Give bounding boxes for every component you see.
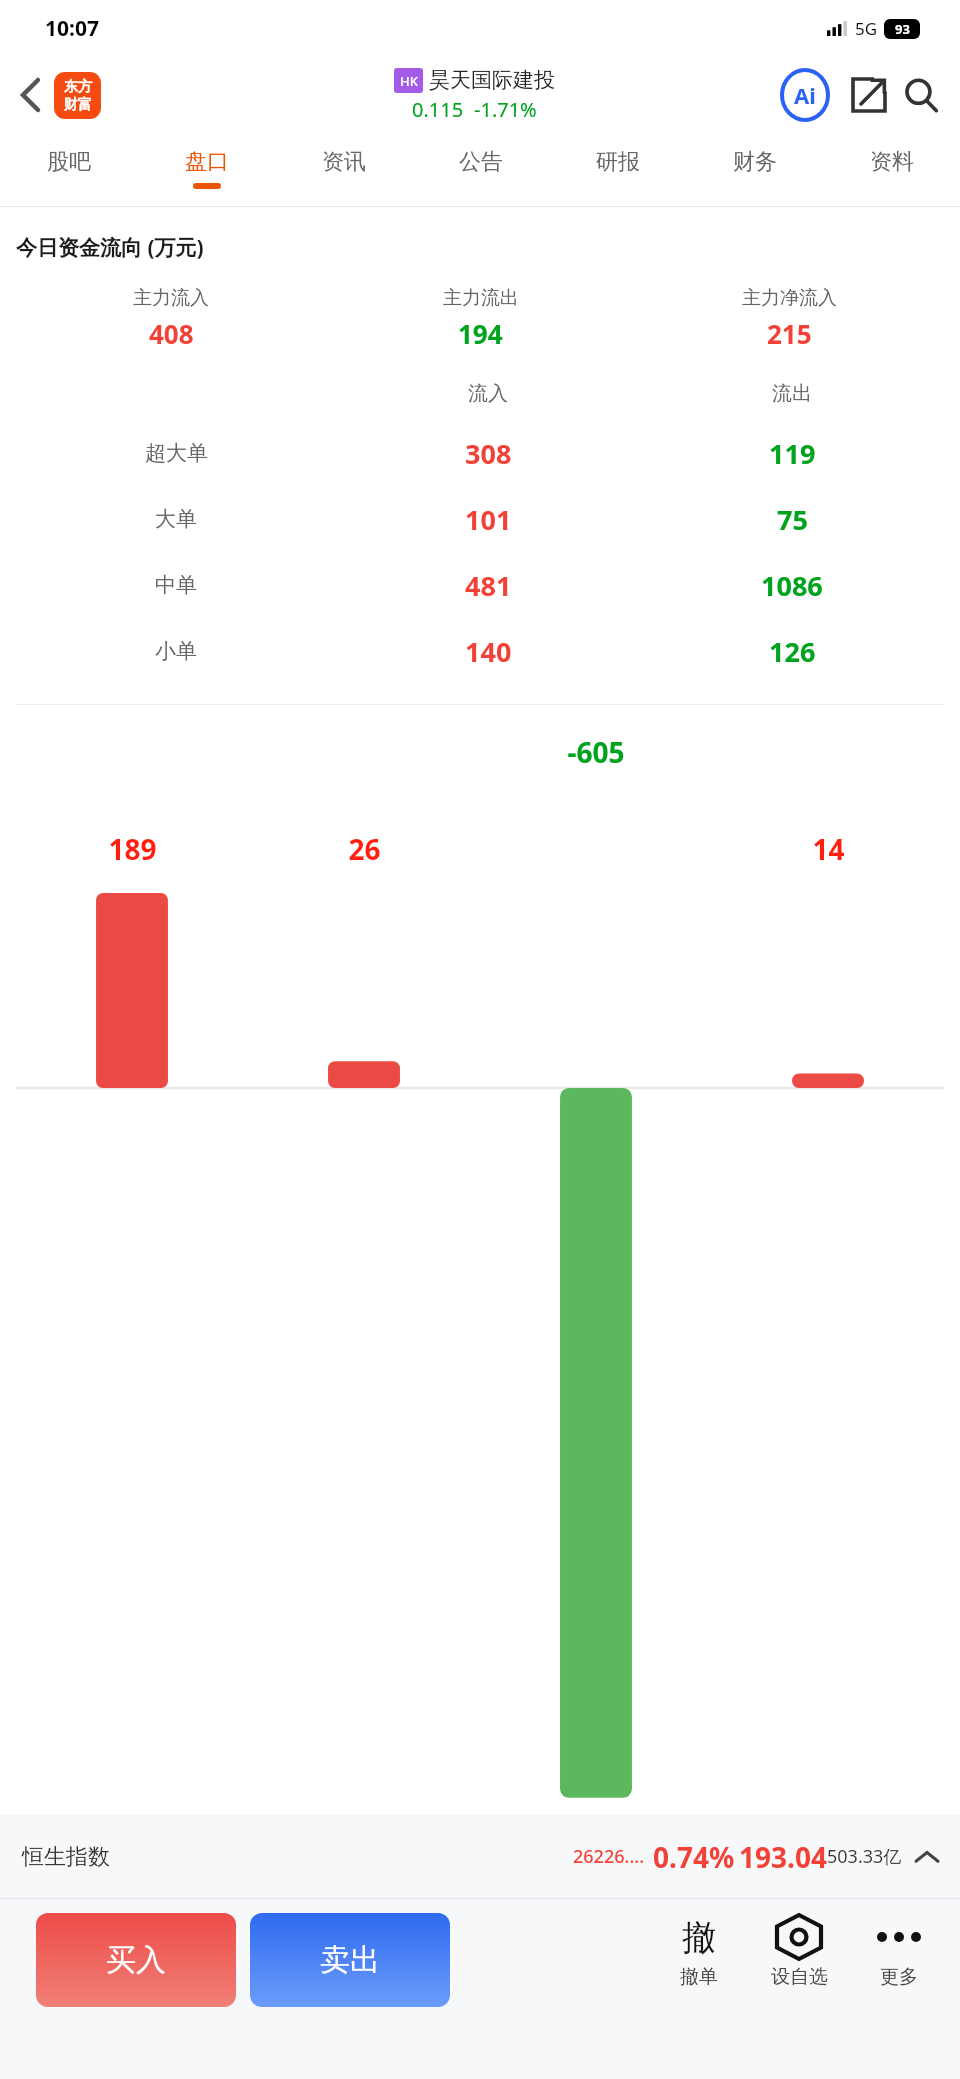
button[interactable]: 公告	[412, 134, 549, 206]
staticText: 昊天国际建投	[429, 67, 555, 93]
button[interactable]: 恒生指数	[0, 1815, 960, 1898]
staticText: 308	[465, 435, 512, 472]
button[interactable]: 盘口	[138, 134, 275, 206]
button[interactable]: 股吧	[0, 134, 138, 206]
staticText: 75	[777, 501, 808, 538]
button[interactable]: 资讯	[275, 134, 412, 206]
button[interactable]: 撤	[660, 1913, 738, 1989]
staticText: 资讯	[322, 148, 366, 176]
staticText: 今日资金流向 (万元)	[16, 233, 204, 262]
staticText: HK	[400, 72, 418, 90]
staticText: 研报	[596, 148, 640, 176]
staticText: 26	[348, 830, 381, 868]
button[interactable]: 大单	[16, 486, 944, 552]
staticText: 101	[465, 501, 512, 538]
staticText: 财务	[733, 148, 777, 176]
staticText: 93	[895, 20, 910, 38]
button[interactable]: AI	[778, 68, 832, 122]
staticText: 资料	[870, 148, 914, 176]
staticText: 0.115	[412, 96, 464, 123]
button[interactable]: 资料	[823, 134, 960, 206]
button[interactable]: 更多	[860, 1913, 938, 1989]
button[interactable]: HK	[394, 67, 555, 123]
staticText: 东方	[64, 78, 92, 96]
staticText: 股吧	[47, 148, 91, 176]
staticText: -1.71%	[474, 96, 537, 123]
staticText: Ai	[794, 80, 816, 110]
staticText: 408	[149, 316, 194, 351]
staticText: 119	[769, 435, 816, 472]
button[interactable]: Search	[898, 72, 944, 118]
staticText: 0.74%	[653, 1838, 735, 1876]
staticText: 流出	[772, 381, 812, 406]
staticText: 140	[465, 633, 512, 670]
staticText: 503.33亿	[827, 1844, 902, 1869]
staticText: 小单	[155, 638, 197, 664]
button[interactable]: 超大单	[16, 420, 944, 486]
staticText: 193.04	[739, 1838, 827, 1876]
staticText: 215	[767, 316, 812, 351]
staticText: 超大单	[145, 440, 208, 466]
staticText: 买入	[106, 1941, 166, 1979]
staticText: -605	[567, 733, 625, 771]
staticText: 10:07	[45, 14, 99, 43]
staticText: 主力流出	[443, 286, 519, 310]
staticText: 14	[812, 830, 845, 868]
staticText: 撤	[682, 1916, 716, 1959]
staticText: 1086	[761, 567, 823, 604]
staticText: 更多	[880, 1965, 918, 1989]
staticText: 189	[108, 830, 157, 868]
button[interactable]: 卖出	[250, 1913, 450, 2007]
staticText: 盘口	[185, 148, 229, 176]
staticText: 财富	[64, 96, 92, 114]
button[interactable]: Share	[846, 72, 892, 118]
staticText: 126	[769, 633, 816, 670]
staticText: 481	[465, 567, 512, 604]
staticText: 5G	[855, 17, 878, 40]
button[interactable]: East Money	[54, 72, 101, 119]
button[interactable]: 财务	[686, 134, 823, 206]
staticText: 恒生指数	[22, 1843, 110, 1871]
staticText: 中单	[155, 572, 197, 598]
staticText: 卖出	[320, 1941, 380, 1979]
button[interactable]: 主力流入	[16, 284, 944, 352]
button[interactable]: 买入	[36, 1913, 236, 2007]
staticText: 26226....	[573, 1844, 645, 1869]
button[interactable]: 小单	[16, 618, 944, 684]
staticText: 流入	[468, 381, 508, 406]
staticText: 主力净流入	[742, 286, 837, 310]
staticText: 公告	[459, 148, 503, 176]
staticText: 设自选	[771, 1965, 828, 1989]
button[interactable]: 中单	[16, 552, 944, 618]
staticText: 大单	[155, 506, 197, 532]
staticText: 主力流入	[133, 286, 209, 310]
button[interactable]: Back	[8, 72, 54, 118]
button[interactable]: 设自选	[760, 1913, 838, 1989]
button[interactable]: 研报	[549, 134, 686, 206]
staticText: 撤单	[680, 1965, 718, 1989]
staticText: 194	[458, 316, 503, 351]
